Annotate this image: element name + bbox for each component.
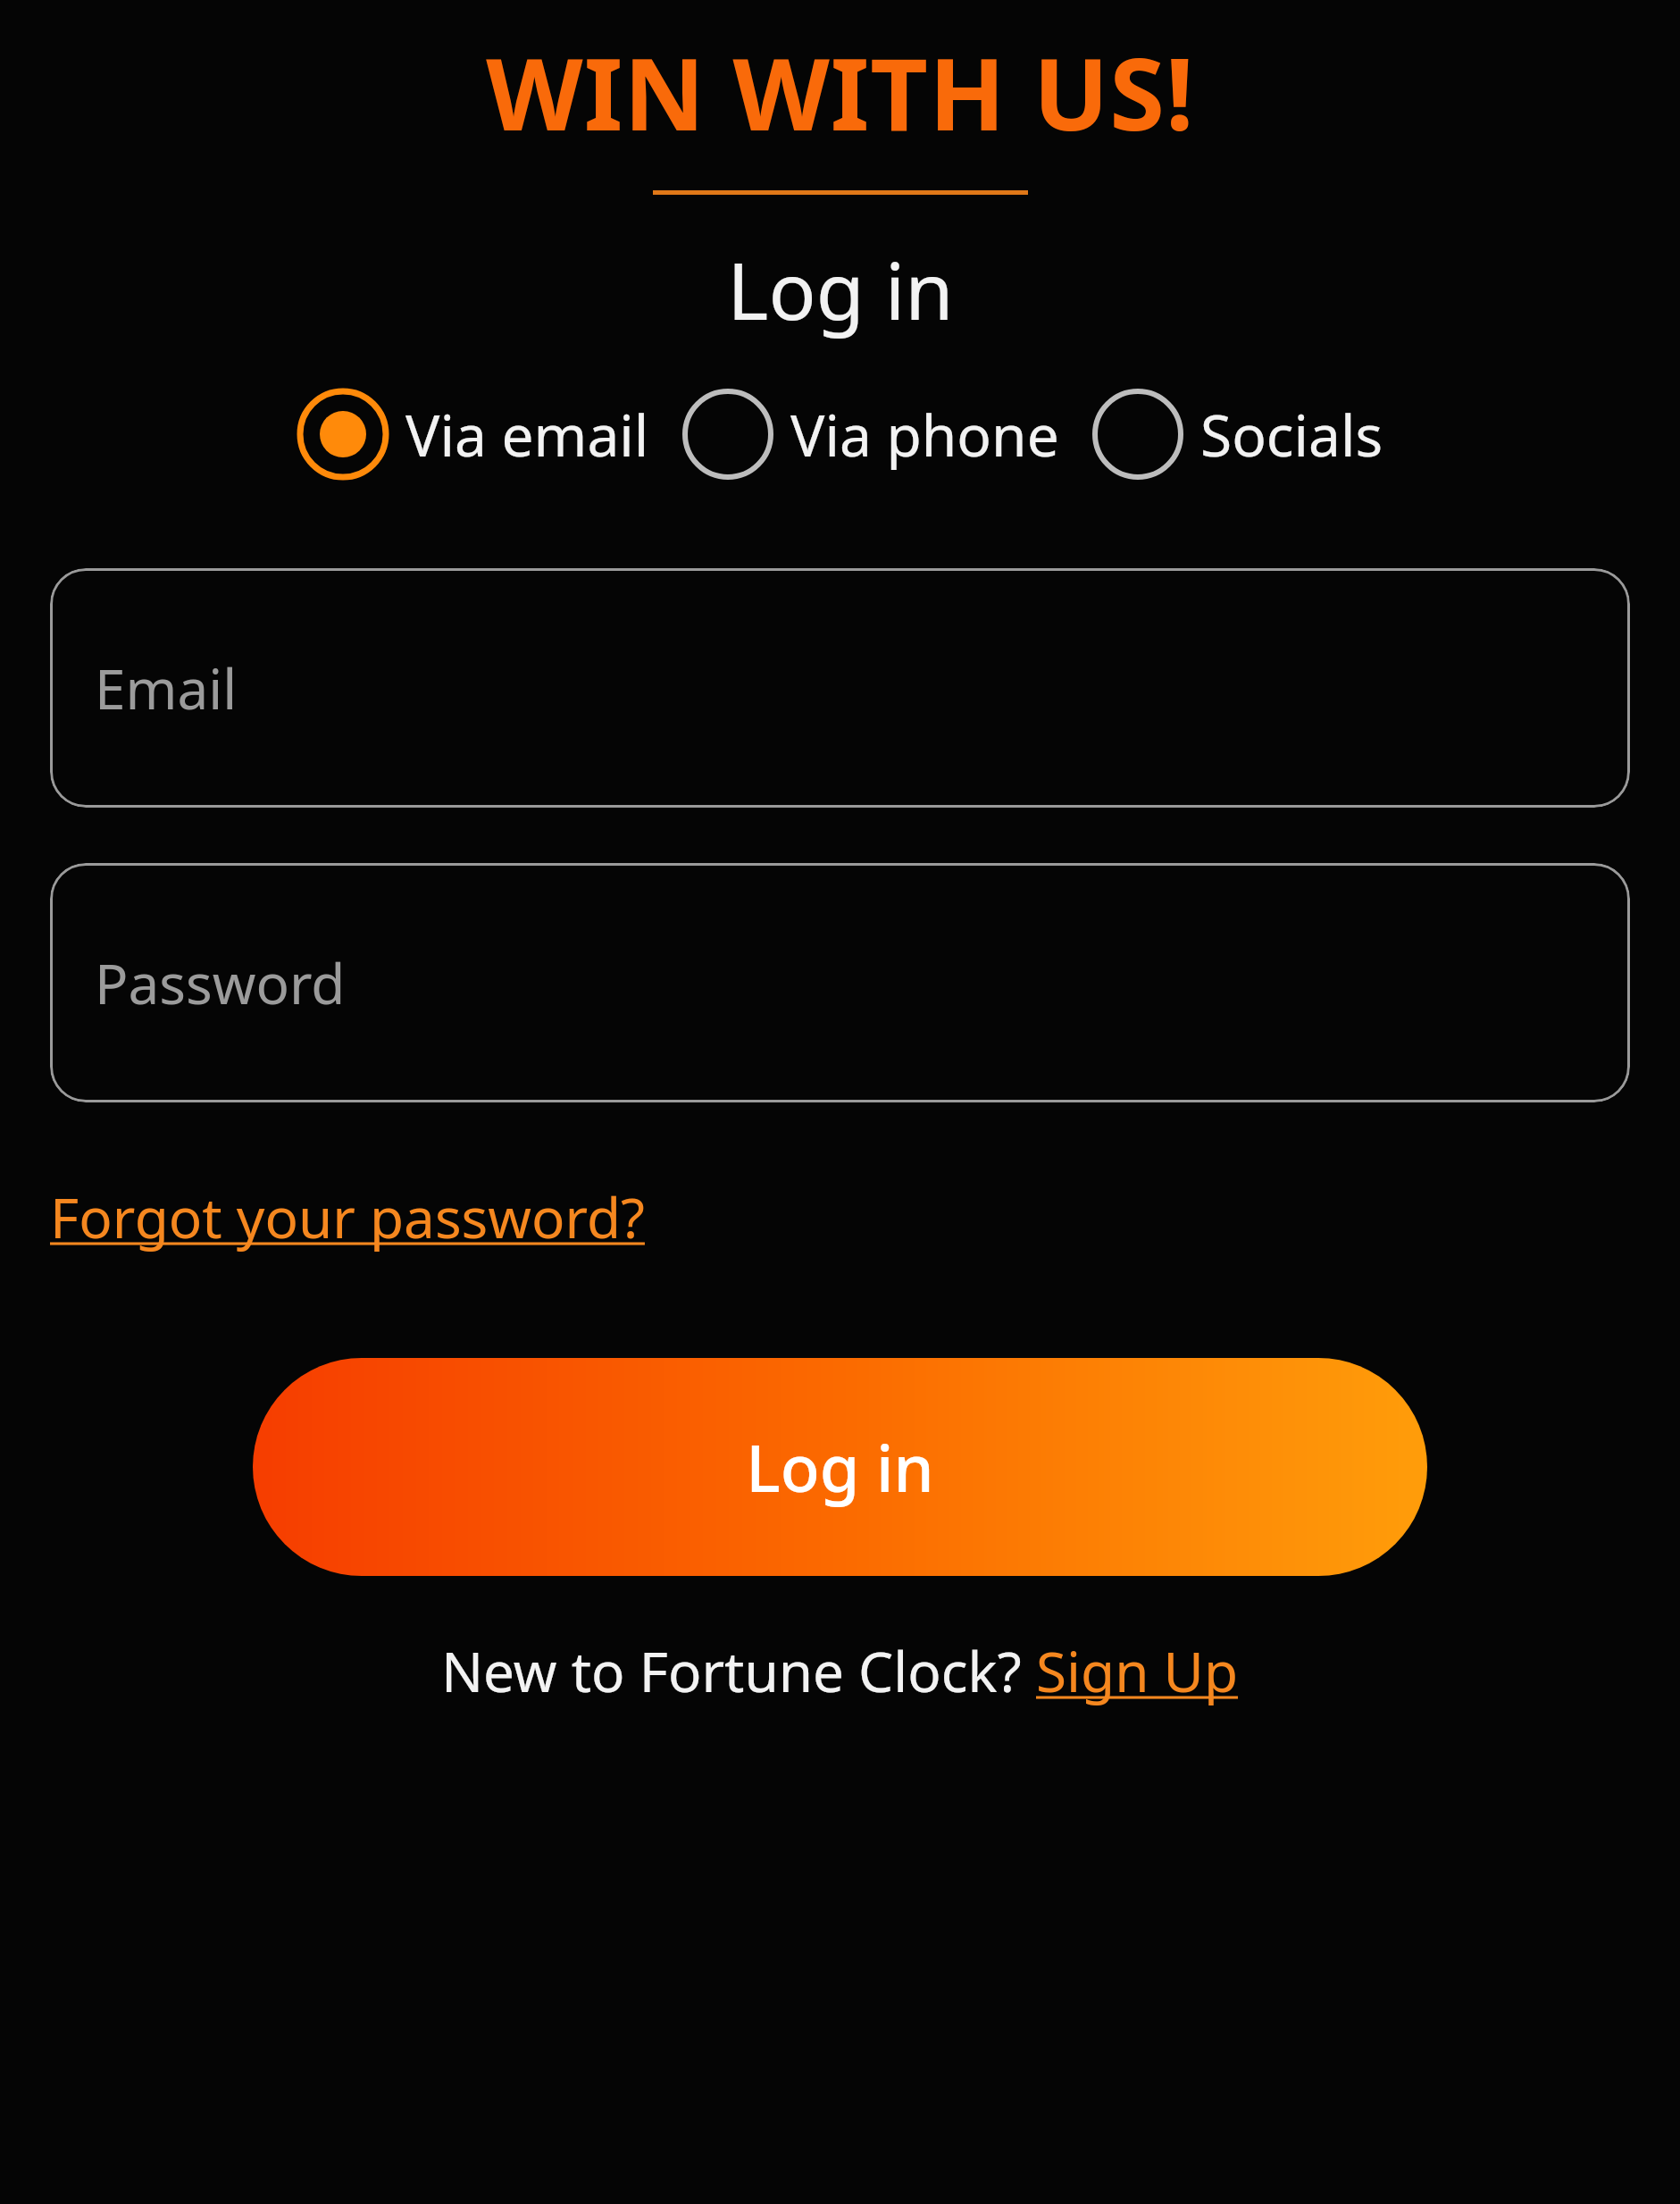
button[interactable]: Socials — [1088, 382, 1387, 486]
button[interactable]: Via phone — [678, 382, 1063, 486]
staticText: Via email — [405, 396, 649, 473]
staticText: Log in — [746, 1423, 934, 1511]
button[interactable]: Log in — [253, 1358, 1427, 1576]
staticText: Socials — [1200, 396, 1383, 473]
staticText: Forgot your password? — [50, 1179, 645, 1254]
staticText: Password — [95, 945, 346, 1020]
button[interactable]: Email — [50, 568, 1630, 808]
button[interactable]: Forgot your password? — [50, 1179, 645, 1254]
staticText: WIN WITH US! — [486, 23, 1195, 160]
staticText: Log in — [727, 236, 954, 343]
staticText: Via phone — [790, 396, 1059, 473]
staticText: Sign Up — [1036, 1633, 1239, 1708]
button[interactable]: Via email — [293, 382, 653, 486]
staticText: Email — [95, 650, 238, 725]
button[interactable]: Sign Up — [1036, 1633, 1239, 1708]
staticText: New to Fortune Clock? — [441, 1633, 1036, 1708]
button[interactable]: Password — [50, 863, 1630, 1102]
